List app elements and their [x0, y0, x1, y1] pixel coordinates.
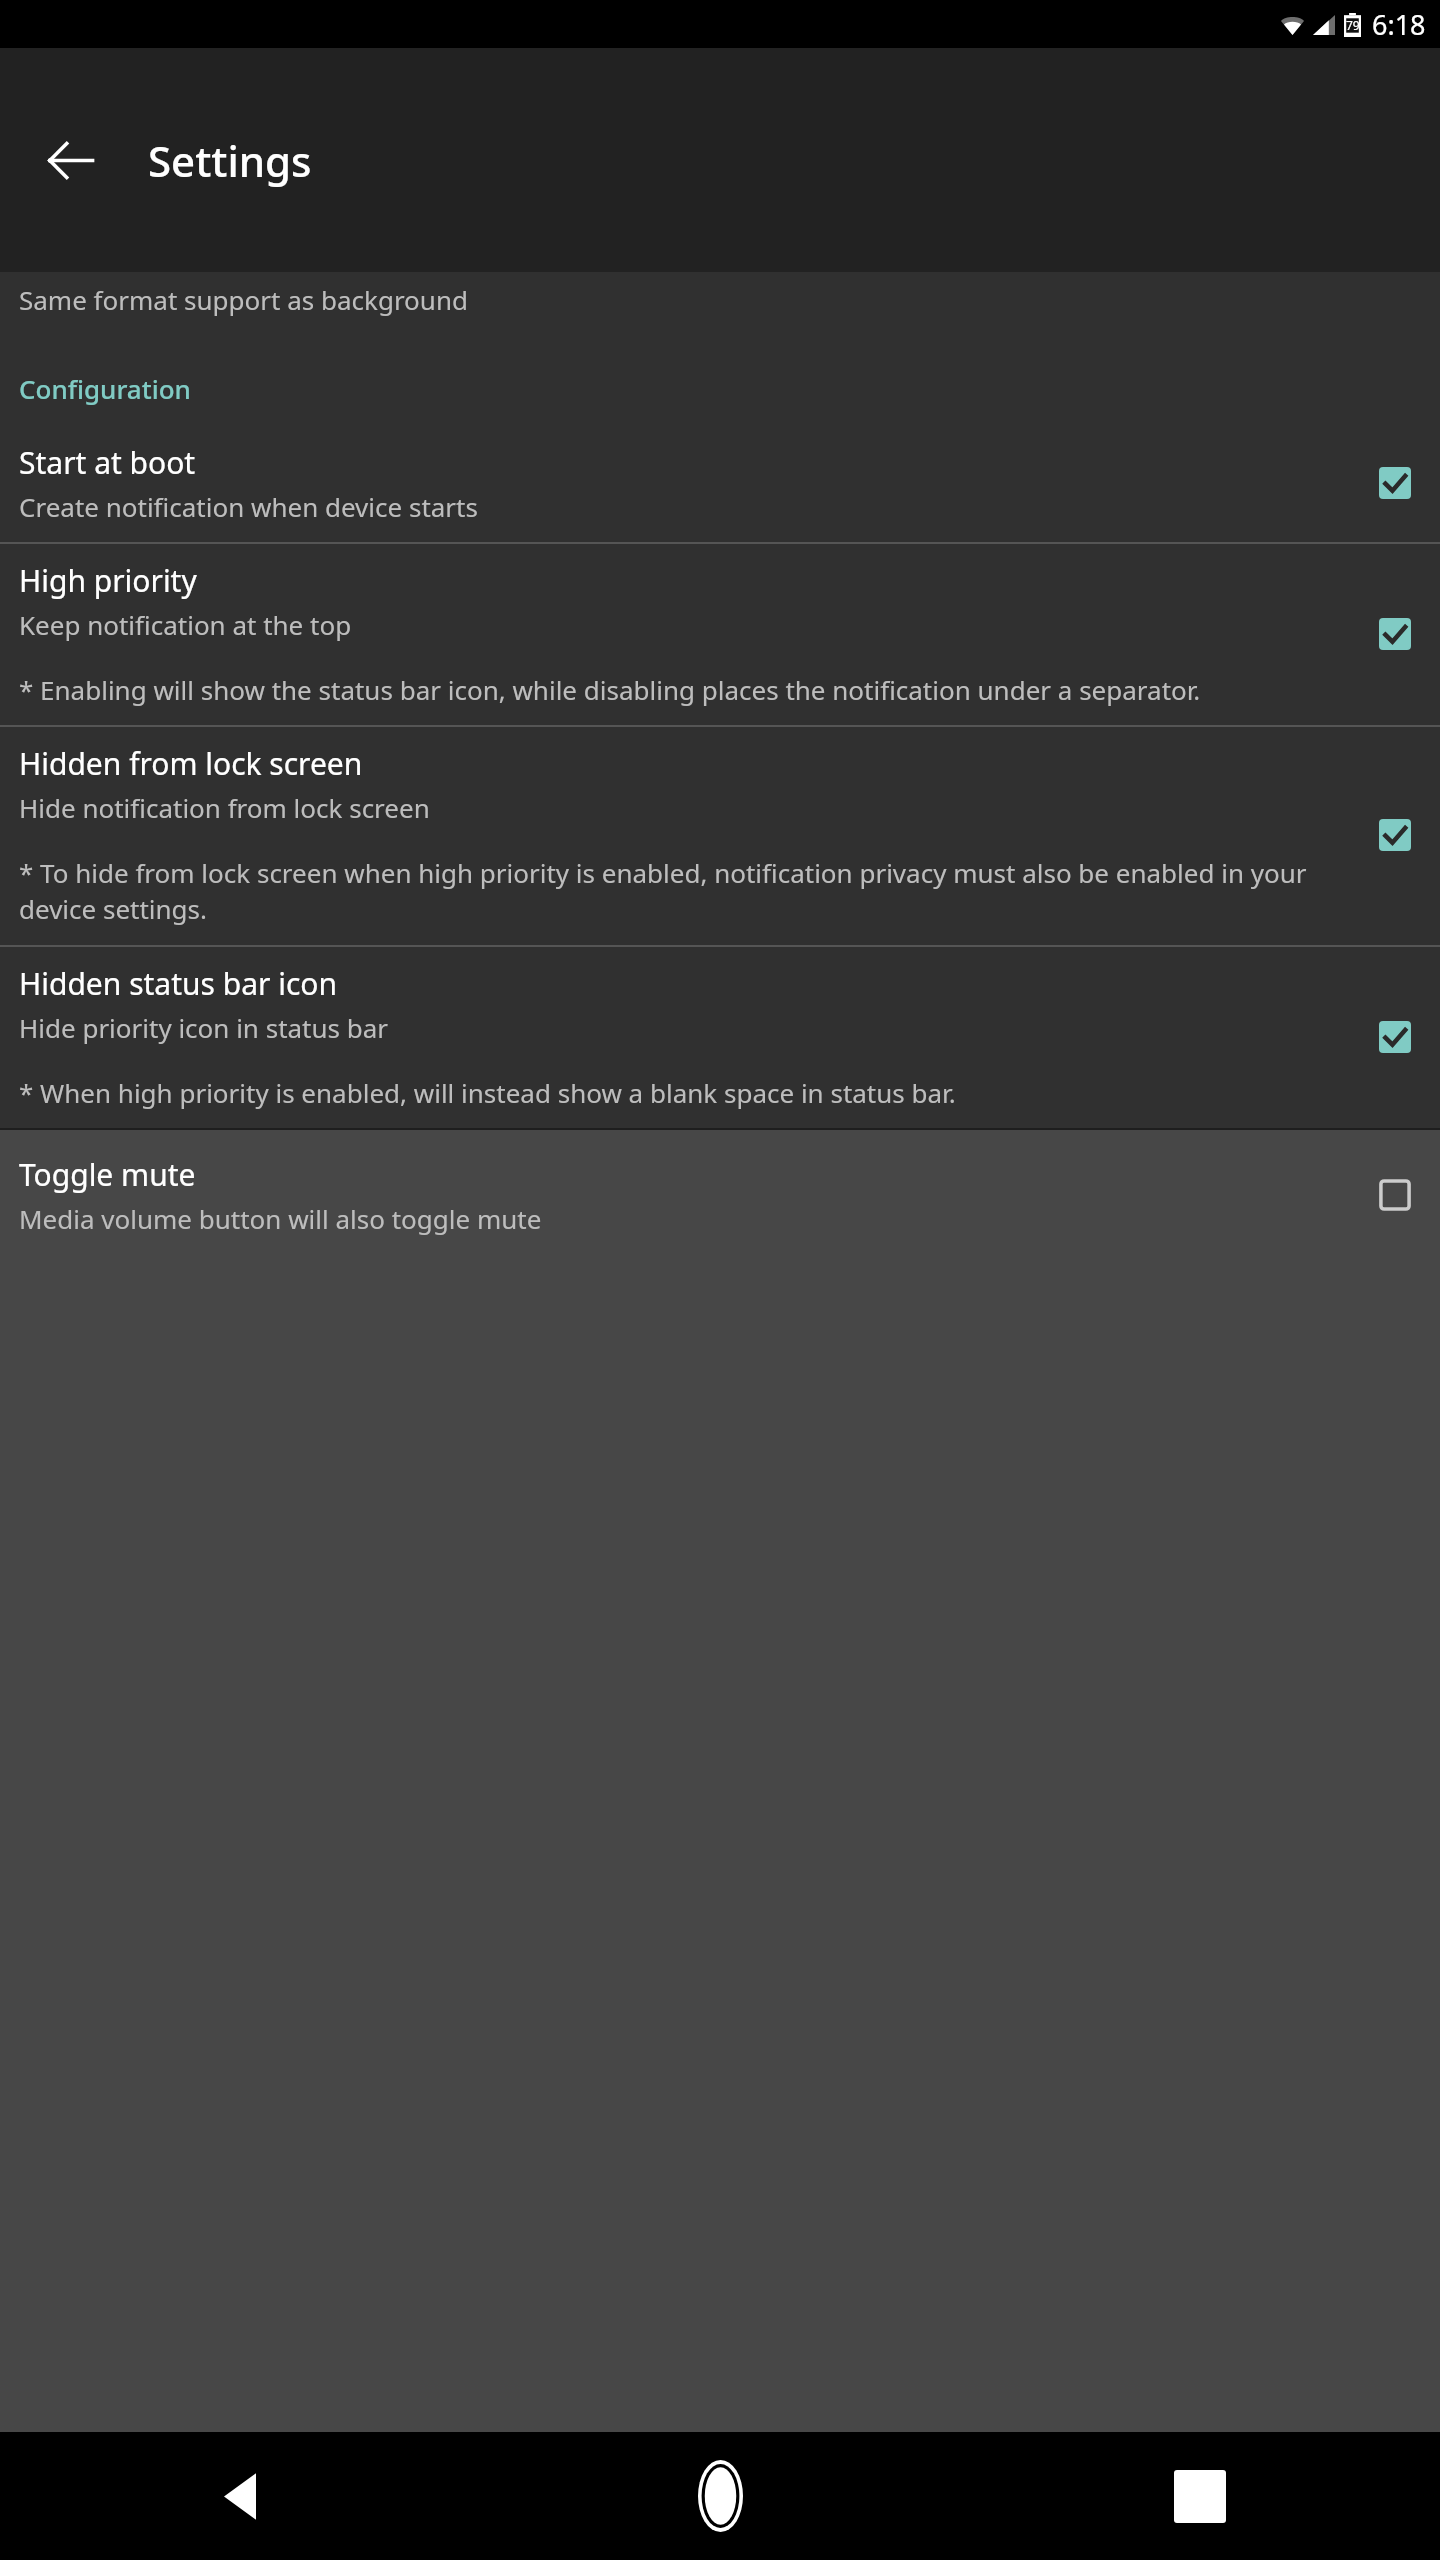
staticText: Media volume button will also toggle mut… — [19, 1201, 542, 1236]
other: Checked — [1368, 1010, 1422, 1064]
other: Checked — [1368, 607, 1422, 661]
staticText: Settings — [148, 132, 312, 189]
staticText: * When high priority is enabled, will in… — [19, 1075, 956, 1110]
button[interactable]: Start at boot — [0, 428, 1440, 542]
staticText: Hidden from lock screen — [19, 743, 363, 784]
staticText: Configuration — [19, 371, 191, 406]
button[interactable]: Back — [0, 2432, 480, 2560]
staticText: Hide priority icon in status bar — [19, 1010, 389, 1045]
staticText: 79 — [1346, 17, 1360, 33]
staticText: * To hide from lock screen when high pri… — [19, 855, 1354, 927]
button[interactable]: Home — [480, 2432, 960, 2560]
staticText: Toggle mute — [19, 1154, 196, 1195]
button[interactable]: Back — [22, 112, 118, 208]
staticText: Start at boot — [19, 442, 196, 483]
button[interactable]: Recent apps — [960, 2432, 1440, 2560]
other: Checked — [1368, 808, 1422, 862]
staticText: 6:18 — [1372, 6, 1426, 43]
staticText: Same format support as background — [19, 282, 468, 317]
button[interactable]: High priority — [0, 544, 1440, 725]
staticText: Hidden status bar icon — [19, 963, 337, 1004]
other: Unchecked — [1368, 1168, 1422, 1222]
staticText: Create notification when device starts — [19, 489, 478, 524]
other: Checked — [1368, 456, 1422, 510]
staticText: * Enabling will show the status bar icon… — [19, 672, 1201, 707]
button[interactable]: Hidden from lock screen — [0, 727, 1440, 945]
button[interactable]: Toggle mute — [0, 1130, 1440, 1266]
staticText: High priority — [19, 560, 197, 601]
button[interactable]: Hidden status bar icon — [0, 947, 1440, 1128]
staticText: Hide notification from lock screen — [19, 790, 430, 825]
staticText: Keep notification at the top — [19, 607, 352, 642]
